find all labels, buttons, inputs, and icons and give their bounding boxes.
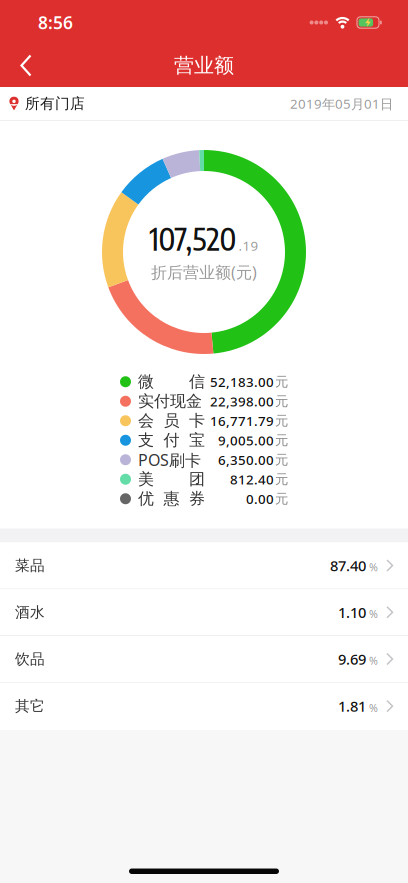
- staticText: 团: [189, 469, 205, 489]
- staticText: 元: [275, 471, 288, 488]
- button[interactable]: 2019年05月01日: [290, 95, 408, 112]
- staticText: 饮品: [15, 650, 45, 668]
- staticText: 营业额: [174, 53, 234, 78]
- button[interactable]: 所有门店: [0, 95, 85, 113]
- button[interactable]: Back: [0, 44, 32, 87]
- staticText: 元: [275, 374, 288, 390]
- staticText: 812.40: [230, 470, 274, 488]
- staticText: 1.10: [338, 602, 366, 622]
- staticText: %: [369, 607, 378, 621]
- staticText: 其它: [15, 697, 45, 715]
- staticText: 美: [138, 469, 154, 489]
- staticText: 22,398.00: [210, 392, 274, 410]
- staticText: 0.00: [246, 490, 274, 508]
- staticText: 员: [163, 411, 179, 431]
- staticText: 会: [138, 411, 154, 431]
- staticText: 所有门店: [25, 95, 85, 113]
- staticText: 实付现金: [138, 391, 202, 411]
- staticText: 酒水: [15, 603, 45, 621]
- staticText: 16,771.79: [210, 412, 274, 430]
- staticText: 52,183.00: [210, 373, 274, 391]
- staticText: POS刷卡: [138, 449, 201, 470]
- staticText: 9.69: [338, 649, 366, 669]
- staticText: 卡: [189, 411, 205, 431]
- staticText: 107,520: [149, 219, 236, 257]
- staticText: 6,350.00: [218, 451, 274, 469]
- staticText: %: [369, 701, 378, 715]
- staticText: 宝: [189, 430, 205, 450]
- staticText: 信: [189, 372, 205, 392]
- staticText: .19: [238, 237, 258, 254]
- staticText: 元: [275, 432, 288, 449]
- staticText: 元: [275, 452, 288, 468]
- staticText: 1.81: [338, 696, 366, 716]
- staticText: 87.40: [330, 556, 366, 575]
- staticText: 支: [138, 430, 154, 450]
- staticText: %: [369, 560, 378, 574]
- staticText: 券: [189, 489, 205, 509]
- staticText: 优: [138, 489, 154, 509]
- button[interactable]: 酒水: [0, 589, 408, 635]
- staticText: 元: [275, 491, 288, 507]
- staticText: 2019年05月01日: [290, 95, 393, 112]
- button[interactable]: 饮品: [0, 636, 408, 682]
- staticText: 元: [275, 413, 288, 429]
- staticText: 付: [163, 430, 179, 450]
- staticText: 惠: [163, 489, 179, 509]
- staticText: %: [369, 654, 378, 668]
- staticText: 9,005.00: [218, 431, 274, 449]
- staticText: 折后营业额(元): [151, 261, 257, 283]
- staticText: 菜品: [15, 556, 45, 574]
- button[interactable]: 其它: [0, 683, 408, 730]
- staticText: 元: [275, 393, 288, 410]
- button[interactable]: 菜品: [0, 542, 408, 588]
- staticText: 微: [138, 372, 154, 392]
- staticText: 8:56: [38, 11, 73, 34]
